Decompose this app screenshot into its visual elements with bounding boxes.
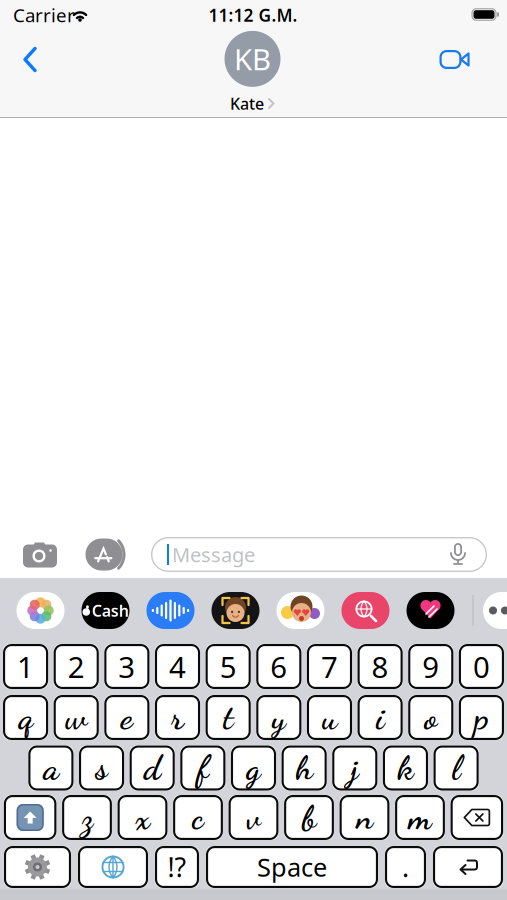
staticText: n (356, 797, 372, 838)
button[interactable]: g (231, 745, 276, 790)
staticText: w (65, 697, 87, 738)
staticText: m (408, 797, 431, 838)
button[interactable]: w (54, 695, 99, 740)
button[interactable]: 1 (3, 644, 48, 689)
button[interactable]: j (332, 745, 377, 790)
button[interactable]: Apple Cash (81, 592, 129, 629)
button[interactable]: f (180, 745, 225, 790)
button[interactable]: s (79, 745, 124, 790)
staticText: c (192, 797, 204, 838)
button[interactable]: Back (22, 46, 38, 72)
button[interactable]: p (459, 695, 504, 740)
staticText: d (144, 747, 161, 789)
button[interactable]: b (284, 795, 334, 840)
button[interactable]: 4 (155, 644, 200, 689)
button[interactable]: i (358, 695, 403, 740)
staticText: 4 (169, 647, 186, 686)
button[interactable]: More apps (483, 592, 507, 629)
button[interactable]: 8 (358, 644, 403, 689)
button[interactable]: e (104, 695, 149, 740)
staticText: y (272, 697, 286, 738)
button[interactable]: d (130, 745, 175, 790)
staticText: h (296, 747, 313, 789)
button[interactable]: Shift (4, 795, 56, 840)
button[interactable]: y (256, 695, 301, 740)
staticText: 0 (473, 647, 490, 686)
button[interactable]: 2 (54, 644, 99, 689)
staticText: Cash (92, 600, 129, 621)
staticText: 3 (118, 647, 135, 686)
staticText: 1 (17, 647, 34, 686)
button[interactable]: v (229, 795, 278, 840)
button[interactable]: a (28, 745, 73, 790)
button[interactable]: q (3, 695, 48, 740)
staticText: 6 (270, 647, 287, 686)
staticText: i (376, 697, 384, 738)
staticText: j (351, 747, 359, 789)
button[interactable]: x (118, 795, 167, 840)
button[interactable]: Space (206, 846, 378, 888)
staticText: l (452, 747, 460, 789)
button[interactable]: Message text field (151, 537, 487, 572)
button[interactable]: Delete (451, 795, 503, 840)
button[interactable]: h (282, 745, 327, 790)
button[interactable]: k (383, 745, 428, 790)
button[interactable]: Kate, conversation details (224, 31, 280, 114)
button[interactable]: iMessage apps (79, 534, 129, 574)
button[interactable]: #images (341, 592, 389, 629)
staticText: 5 (220, 647, 237, 686)
button[interactable]: o (408, 695, 453, 740)
staticText: b (302, 797, 316, 838)
staticText: k (397, 747, 413, 789)
button[interactable]: l (433, 745, 479, 790)
button[interactable]: Next keyboard (78, 846, 148, 888)
button[interactable]: z (62, 795, 112, 840)
button[interactable]: !? (155, 846, 199, 888)
button[interactable]: 5 (206, 644, 251, 689)
staticText: Message (172, 541, 255, 568)
button[interactable]: 0 (459, 644, 504, 689)
button[interactable]: 3 (104, 644, 149, 689)
button[interactable]: . (385, 846, 426, 888)
staticText: Carrier (13, 3, 75, 27)
button[interactable]: u (307, 695, 352, 740)
staticText: KB (234, 39, 271, 78)
button[interactable]: FaceTime video (439, 50, 470, 69)
staticText: 9 (422, 647, 439, 686)
button[interactable]: Return (433, 846, 503, 888)
staticText: r (171, 697, 184, 738)
button[interactable]: n (340, 795, 389, 840)
button[interactable]: Camera (23, 541, 57, 567)
staticText: p (474, 697, 488, 738)
staticText: a (43, 747, 58, 789)
button[interactable]: Digital Touch (406, 592, 454, 629)
button[interactable]: c (173, 795, 223, 840)
staticText: 2 (68, 647, 85, 686)
staticText: e (121, 697, 133, 738)
staticText: q (19, 697, 33, 738)
staticText: 8 (372, 647, 389, 686)
staticText: !? (167, 849, 186, 885)
button[interactable]: Keyboard settings (4, 846, 71, 888)
staticText: Kate (230, 93, 264, 114)
staticText: v (246, 797, 260, 838)
button[interactable]: Memoji (211, 592, 259, 629)
staticText: Space (257, 850, 327, 884)
staticText: o (424, 697, 437, 738)
staticText: s (95, 747, 107, 789)
button[interactable]: 7 (307, 644, 352, 689)
staticText: x (135, 797, 150, 838)
button[interactable]: Photos (16, 592, 64, 629)
staticText: g (246, 747, 260, 789)
staticText: z (81, 797, 92, 838)
staticText: f (197, 747, 208, 789)
staticText: . (402, 849, 409, 885)
button[interactable]: Memoji Stickers (276, 592, 324, 629)
button[interactable]: m (395, 795, 445, 840)
button[interactable]: t (206, 695, 251, 740)
button[interactable]: 9 (408, 644, 453, 689)
button[interactable]: r (155, 695, 200, 740)
button[interactable]: 6 (256, 644, 301, 689)
button[interactable]: Audio message (146, 592, 194, 629)
button[interactable]: Dictate (449, 542, 467, 565)
